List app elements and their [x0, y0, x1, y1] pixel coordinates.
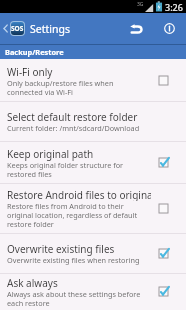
staticText: SOS — [11, 24, 24, 33]
button[interactable]: Select default restore folder — [0, 101, 186, 141]
staticText: Select default restore folder — [7, 112, 138, 123]
button[interactable]: Undo — [120, 13, 153, 44]
staticText: Wi-Fi only — [7, 67, 53, 78]
staticText: 3G — [137, 1, 144, 8]
other: Back — [3, 23, 8, 34]
button[interactable]: Back — [0, 21, 74, 36]
button[interactable]: Wi-Fi only — [0, 59, 186, 101]
staticText: Settings — [30, 22, 70, 36]
staticText: Restore files from Android to their orig… — [7, 201, 151, 229]
button[interactable]: Ask always — [0, 273, 186, 310]
staticText: Only backup/restore files when connected… — [7, 78, 151, 97]
staticText: Ask always — [7, 278, 58, 289]
staticText: Backup/Restore — [5, 47, 64, 57]
staticText: Keep original path — [7, 149, 94, 160]
staticText: Current folder: /mnt/sdcard/Download — [7, 123, 140, 133]
staticText: Always ask about these settings before e… — [7, 289, 151, 308]
staticText: 3:26 — [165, 1, 183, 13]
staticText: Overwrite existing files when restoring — [7, 255, 140, 265]
button[interactable]: Overwrite existing files — [0, 233, 186, 273]
staticText: Overwrite existing files — [7, 244, 115, 255]
staticText: Restore Android files to original locati… — [7, 190, 151, 201]
staticText: Keeps original folder structure for rest… — [7, 160, 151, 179]
button[interactable]: Restore Android files to original locati… — [0, 183, 186, 233]
button[interactable]: Info — [153, 13, 186, 44]
button[interactable]: Keep original path — [0, 141, 186, 183]
